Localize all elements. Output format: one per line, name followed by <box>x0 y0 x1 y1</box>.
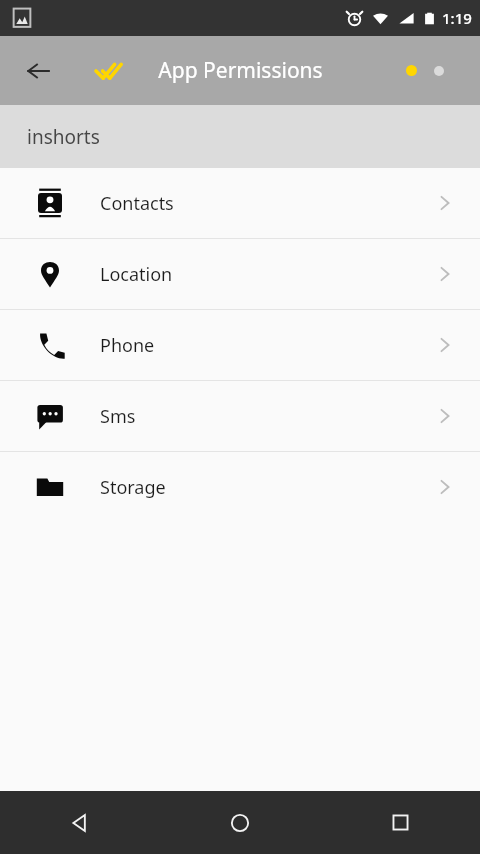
staticText: Storage <box>100 475 166 500</box>
button[interactable]: Contacts <box>0 168 480 238</box>
button[interactable]: Grant all permissions <box>86 49 130 93</box>
button[interactable]: Back <box>0 791 160 854</box>
button[interactable]: Back <box>14 47 62 95</box>
button[interactable]: Recent apps <box>320 791 480 854</box>
button[interactable]: Sms <box>0 381 480 451</box>
staticText: Contacts <box>100 191 174 216</box>
staticText: 1:19 <box>442 8 472 28</box>
staticText: Sms <box>100 404 136 429</box>
staticText: App Permissions <box>158 56 323 85</box>
button[interactable]: Location <box>0 239 480 309</box>
button[interactable]: Phone <box>0 310 480 380</box>
button[interactable]: Home <box>160 791 320 854</box>
button[interactable]: Storage <box>0 452 480 522</box>
staticText: Phone <box>100 333 155 358</box>
staticText: Location <box>100 262 173 287</box>
staticText: inshorts <box>27 124 100 150</box>
